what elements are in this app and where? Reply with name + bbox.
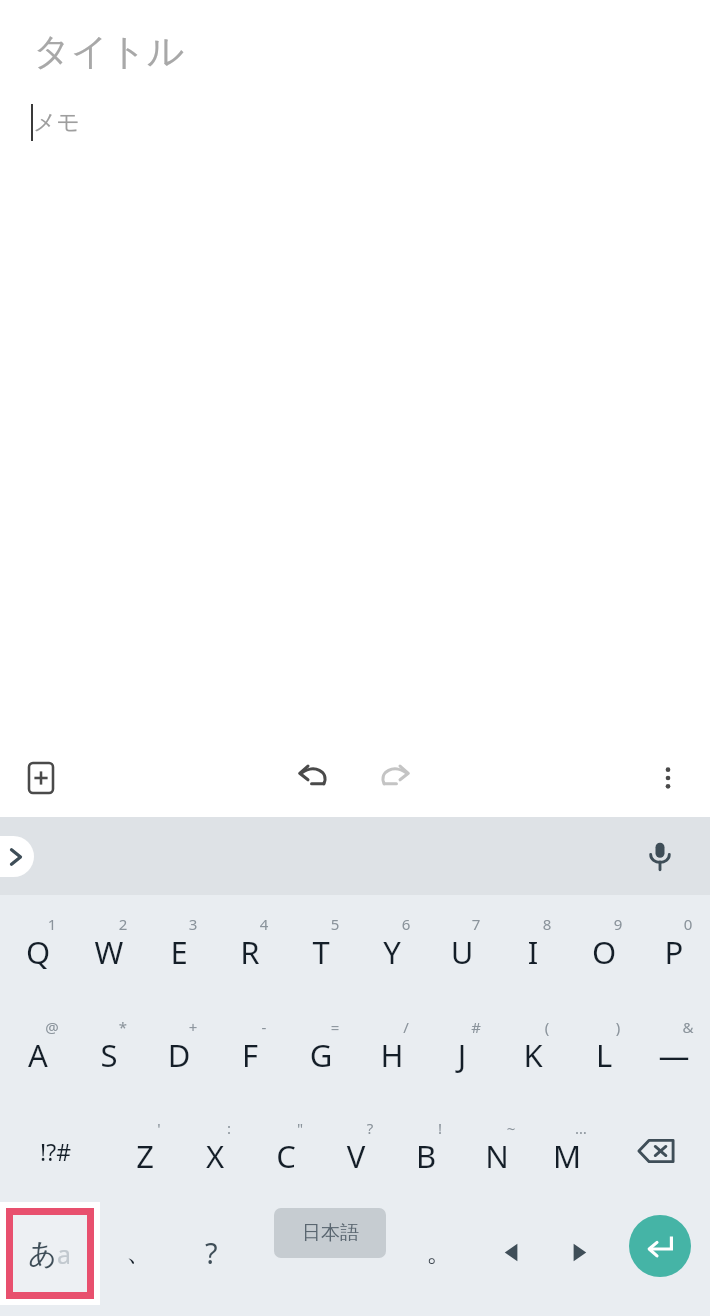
staticText: & <box>678 1017 698 1037</box>
staticText: 5 <box>325 914 345 934</box>
staticText: # <box>466 1017 486 1037</box>
button[interactable]: 7 <box>427 905 497 989</box>
staticText: 2 <box>113 914 133 934</box>
button[interactable]: ! <box>391 1109 461 1193</box>
staticText: 9 <box>608 914 628 934</box>
button[interactable]: Enter <box>629 1215 691 1277</box>
button[interactable]: 4 <box>215 905 285 989</box>
staticText: ? <box>360 1118 380 1138</box>
button[interactable]: 日本語 <box>274 1208 386 1258</box>
staticText: M <box>532 1135 602 1177</box>
button[interactable]: @ <box>3 1008 73 1092</box>
button[interactable]: ) <box>569 1008 639 1092</box>
staticText: + <box>183 1017 203 1037</box>
staticText: / <box>396 1017 416 1037</box>
button[interactable]: Undo <box>286 751 340 805</box>
button[interactable]: # <box>427 1008 497 1092</box>
button[interactable]: … <box>532 1109 602 1193</box>
staticText: 3 <box>183 914 203 934</box>
staticText: S <box>74 1034 144 1076</box>
button[interactable]: 1 <box>3 905 73 989</box>
staticText: A <box>3 1034 73 1076</box>
button[interactable]: / <box>357 1008 427 1092</box>
button[interactable]: Add <box>14 751 68 805</box>
button[interactable]: 3 <box>144 905 214 989</box>
staticText: Q <box>3 931 73 973</box>
button[interactable]: * <box>74 1008 144 1092</box>
staticText: P <box>639 931 709 973</box>
staticText: H <box>357 1034 427 1076</box>
button[interactable]: " <box>251 1109 321 1193</box>
button[interactable]: Move cursor left <box>478 1207 544 1297</box>
staticText: O <box>569 931 639 973</box>
staticText: = <box>325 1017 345 1037</box>
button[interactable]: ? <box>321 1109 391 1193</box>
staticText: メモ <box>33 108 81 137</box>
staticText: … <box>571 1118 591 1138</box>
staticText: : <box>219 1118 239 1138</box>
staticText: Y <box>357 931 427 973</box>
staticText: - <box>254 1017 274 1037</box>
button[interactable]: - <box>215 1008 285 1092</box>
staticText: 4 <box>254 914 274 934</box>
staticText: R <box>215 931 285 973</box>
staticText: 、 <box>126 1235 153 1269</box>
staticText: Z <box>110 1135 180 1177</box>
staticText: ' <box>149 1118 169 1138</box>
staticText: 8 <box>537 914 557 934</box>
staticText: V <box>321 1135 391 1177</box>
staticText: B <box>391 1135 461 1177</box>
button[interactable]: More options <box>641 751 695 805</box>
button[interactable]: 2 <box>74 905 144 989</box>
button[interactable]: & <box>639 1008 709 1092</box>
button[interactable]: 6 <box>357 905 427 989</box>
staticText: U <box>427 931 497 973</box>
button[interactable]: Comma <box>106 1207 172 1297</box>
staticText: — <box>639 1034 709 1076</box>
staticText: 0 <box>678 914 698 934</box>
button[interactable]: 8 <box>498 905 568 989</box>
button[interactable]: 9 <box>569 905 639 989</box>
button[interactable]: + <box>144 1008 214 1092</box>
button[interactable]: Backspace <box>620 1109 692 1193</box>
staticText: J <box>427 1034 497 1076</box>
button[interactable]: Symbols <box>16 1109 96 1193</box>
button[interactable]: Voice input <box>633 829 687 883</box>
staticText: a <box>57 1237 72 1271</box>
button[interactable]: Question mark <box>178 1207 244 1297</box>
staticText: !?# <box>40 1136 72 1167</box>
staticText: * <box>113 1017 133 1037</box>
staticText: D <box>144 1034 214 1076</box>
staticText: I <box>498 931 568 973</box>
staticText: 1 <box>42 914 62 934</box>
staticText: 7 <box>466 914 486 934</box>
button[interactable]: Switch input mode <box>13 1215 87 1292</box>
staticText: C <box>251 1135 321 1177</box>
staticText: W <box>74 931 144 973</box>
button[interactable]: : <box>180 1109 250 1193</box>
button[interactable]: Redo <box>368 751 422 805</box>
button[interactable]: 0 <box>639 905 709 989</box>
staticText: F <box>215 1034 285 1076</box>
staticText: E <box>144 931 214 973</box>
staticText: ? <box>205 1233 218 1272</box>
staticText: " <box>290 1118 310 1138</box>
staticText: L <box>569 1034 639 1076</box>
staticText: G <box>286 1034 356 1076</box>
button[interactable]: Expand toolbar <box>0 836 34 877</box>
button[interactable]: ' <box>110 1109 180 1193</box>
staticText: あ <box>28 1236 57 1271</box>
staticText: ~ <box>501 1118 521 1138</box>
staticText: ) <box>608 1017 628 1037</box>
button[interactable]: = <box>286 1008 356 1092</box>
button[interactable]: Period <box>406 1207 472 1297</box>
button[interactable]: ( <box>498 1008 568 1092</box>
staticText: @ <box>42 1017 62 1037</box>
button[interactable]: 5 <box>286 905 356 989</box>
staticText: N <box>462 1135 532 1177</box>
button[interactable]: Move cursor right <box>546 1207 612 1297</box>
staticText: 日本語 <box>302 1221 359 1245</box>
staticText: タイトル <box>33 28 185 75</box>
button[interactable]: ~ <box>462 1109 532 1193</box>
staticText: 。 <box>426 1235 453 1269</box>
